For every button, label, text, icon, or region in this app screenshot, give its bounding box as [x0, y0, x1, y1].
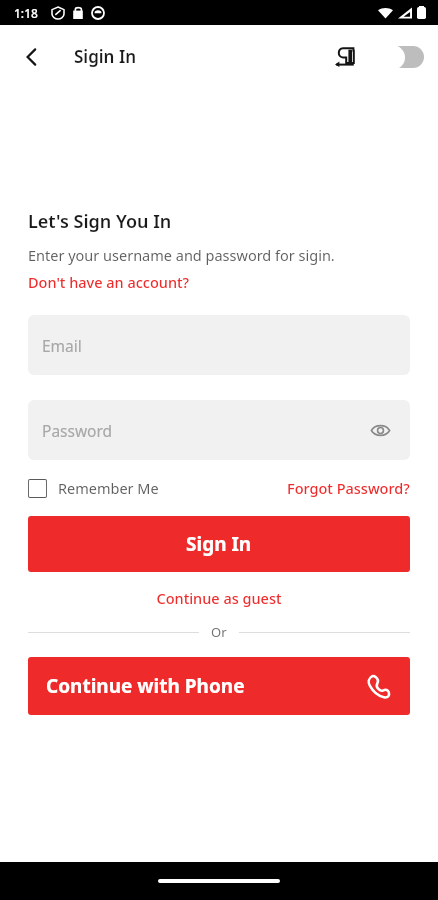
button[interactable]: Don't have an account? — [28, 272, 190, 292]
button[interactable]: Forgot Password? — [287, 478, 410, 498]
button[interactable]: Remember Me — [28, 478, 159, 498]
button[interactable]: Continue with Phone — [28, 657, 410, 715]
staticText: Sigin In — [74, 45, 137, 68]
staticText: Password — [42, 420, 113, 441]
staticText: Remember Me — [58, 478, 159, 498]
button[interactable]: Toggle — [378, 42, 424, 72]
staticText: Let's Sign You In — [28, 209, 172, 234]
button[interactable]: Password — [28, 400, 410, 460]
staticText: Enter your username and password for sig… — [28, 245, 335, 265]
staticText: 1:18 — [14, 5, 38, 21]
button[interactable]: Back — [12, 37, 52, 77]
staticText: Email — [42, 335, 82, 356]
button[interactable]: Continue as guest — [156, 588, 282, 608]
staticText: Sign In — [186, 531, 252, 557]
staticText: Or — [211, 623, 227, 641]
button[interactable]: Show password — [364, 414, 396, 446]
button[interactable]: Email — [28, 315, 410, 375]
staticText: Continue with Phone — [46, 673, 245, 699]
button[interactable]: Text direction — [328, 40, 362, 74]
button[interactable]: Sign In — [28, 516, 410, 572]
